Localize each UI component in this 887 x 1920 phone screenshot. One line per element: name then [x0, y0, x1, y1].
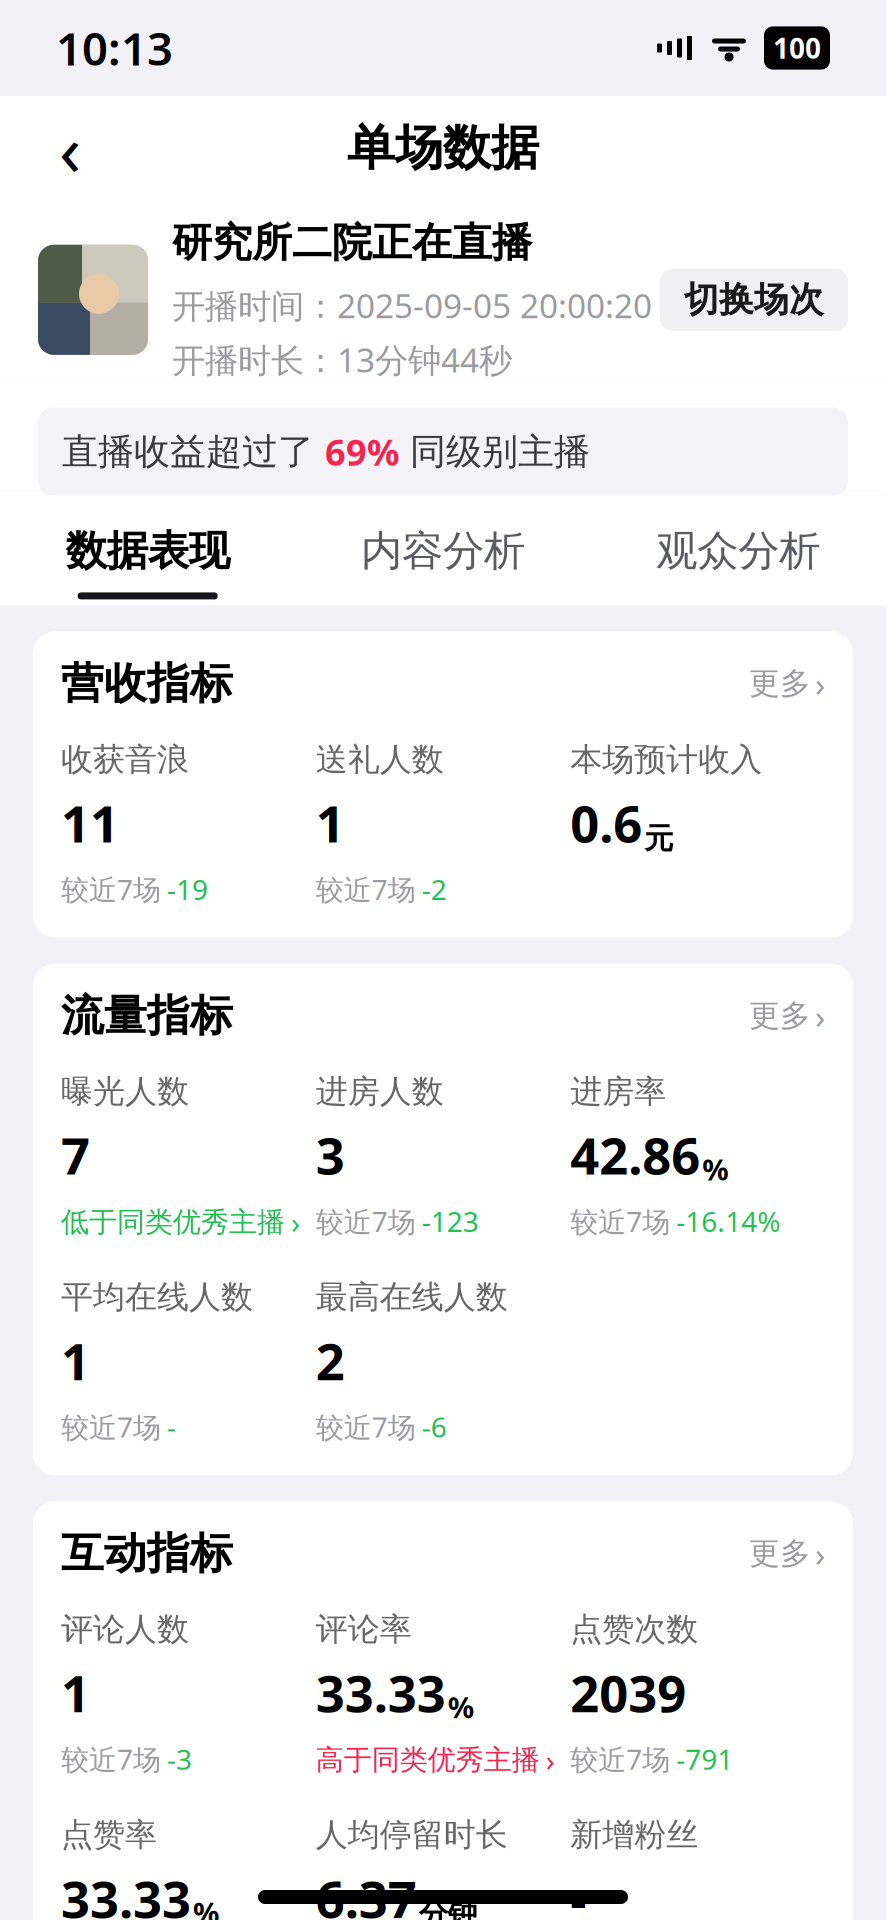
staticText: 曝光人数	[61, 1072, 189, 1111]
staticText: 最高在线人数	[316, 1278, 508, 1317]
staticText: 2039	[570, 1659, 686, 1726]
staticText: 更多	[749, 665, 811, 702]
staticText: 元	[644, 820, 673, 856]
staticText: 42.86	[570, 1121, 700, 1189]
staticText: 进房人数	[316, 1072, 444, 1111]
staticText: %	[193, 1893, 219, 1920]
button[interactable]: 更多	[749, 661, 825, 706]
staticText: 69%	[325, 428, 399, 476]
staticText: -3	[167, 1740, 192, 1777]
staticText: 营收指标	[61, 657, 233, 710]
staticText: ›	[546, 1740, 555, 1779]
staticText: 较近7场	[570, 1740, 670, 1777]
staticText: 同级别主播	[399, 430, 590, 474]
button[interactable]: 更多	[749, 994, 825, 1038]
staticText: 单场数据	[347, 118, 539, 177]
staticText: 高于同类优秀主播	[316, 1743, 540, 1777]
staticText: 更多	[749, 997, 811, 1035]
staticText: -19	[167, 870, 208, 908]
staticText: ‹	[59, 100, 81, 196]
staticText: 33.33	[316, 1659, 446, 1726]
staticText: 2	[316, 1327, 345, 1394]
staticText: 较近7场	[570, 1203, 670, 1240]
staticText: 进房率	[570, 1072, 666, 1111]
staticText: ›	[815, 661, 825, 706]
staticText: 33.33	[61, 1865, 191, 1920]
staticText: 1	[316, 789, 345, 856]
staticText: 低于同类优秀主播	[61, 1205, 285, 1239]
staticText: 新增粉丝	[570, 1815, 698, 1855]
staticText: 较近7场	[316, 1203, 416, 1240]
staticText: 切换场次	[684, 278, 824, 321]
staticText: 10:13	[56, 18, 173, 78]
staticText: 较近7场	[316, 870, 416, 908]
button[interactable]: 返回	[34, 112, 106, 184]
staticText: ›	[815, 1531, 825, 1576]
staticText: 直播收益超过了	[62, 430, 325, 474]
staticText: 100	[773, 29, 821, 67]
staticText: 分钟	[419, 1896, 477, 1920]
staticText: -	[167, 1408, 176, 1445]
button[interactable]: 观众分析	[591, 496, 886, 605]
staticText: 流量指标	[61, 990, 233, 1042]
button[interactable]: 切换场次	[660, 269, 848, 331]
staticText: -6	[422, 1408, 447, 1445]
button[interactable]: 数据表现	[0, 496, 295, 605]
staticText: %	[702, 1150, 728, 1189]
staticText: 较近7场	[61, 1408, 161, 1445]
staticText: 研究所二院正在直播	[172, 218, 532, 267]
button[interactable]: 更多	[749, 1531, 825, 1576]
staticText: ›	[815, 994, 825, 1038]
staticText: 人均停留时长	[316, 1815, 508, 1855]
staticText: 较近7场	[61, 870, 161, 908]
staticText: ›	[291, 1203, 300, 1242]
staticText: -2	[422, 870, 447, 908]
staticText: 开播时长：13分钟44秒	[172, 337, 512, 382]
staticText: 互动指标	[61, 1527, 233, 1580]
staticText: 收获音浪	[61, 740, 189, 779]
staticText: 6.37	[316, 1865, 417, 1920]
staticText: 更多	[749, 1535, 811, 1572]
staticText: 观众分析	[656, 526, 820, 576]
staticText: 0.6	[570, 789, 642, 856]
staticText: 评论人数	[61, 1610, 189, 1649]
staticText: 内容分析	[361, 526, 525, 576]
button[interactable]: 内容分析	[295, 496, 591, 605]
staticText: 点赞次数	[570, 1610, 698, 1649]
staticText: -16.14%	[676, 1203, 780, 1240]
staticText: 点赞率	[61, 1815, 157, 1855]
staticText: %	[448, 1687, 474, 1726]
staticText: -123	[422, 1203, 479, 1240]
staticText: 1	[61, 1327, 90, 1394]
staticText: -791	[676, 1740, 733, 1777]
staticText: 11	[61, 789, 119, 856]
staticText: 数据表现	[66, 526, 230, 576]
staticText: 送礼人数	[316, 740, 444, 779]
staticText: 较近7场	[316, 1408, 416, 1445]
staticText: 7	[61, 1121, 90, 1189]
staticText: 较近7场	[61, 1740, 161, 1777]
staticText: 评论率	[316, 1610, 412, 1649]
staticText: 平均在线人数	[61, 1278, 253, 1317]
staticText: 3	[316, 1121, 345, 1189]
staticText: -	[570, 1865, 586, 1920]
staticText: 本场预计收入	[570, 740, 762, 779]
staticText: 1	[61, 1659, 90, 1726]
staticText: 开播时间：2025-09-05 20:00:20	[172, 283, 652, 327]
